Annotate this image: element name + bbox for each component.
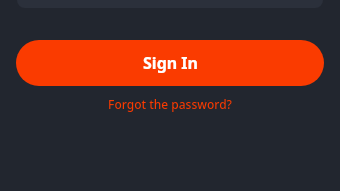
- button[interactable]: Sign In: [16, 40, 324, 86]
- staticText: Sign In: [143, 52, 198, 74]
- button[interactable]: Forgot the password?: [98, 94, 242, 114]
- staticText: Forgot the password?: [108, 96, 232, 112]
